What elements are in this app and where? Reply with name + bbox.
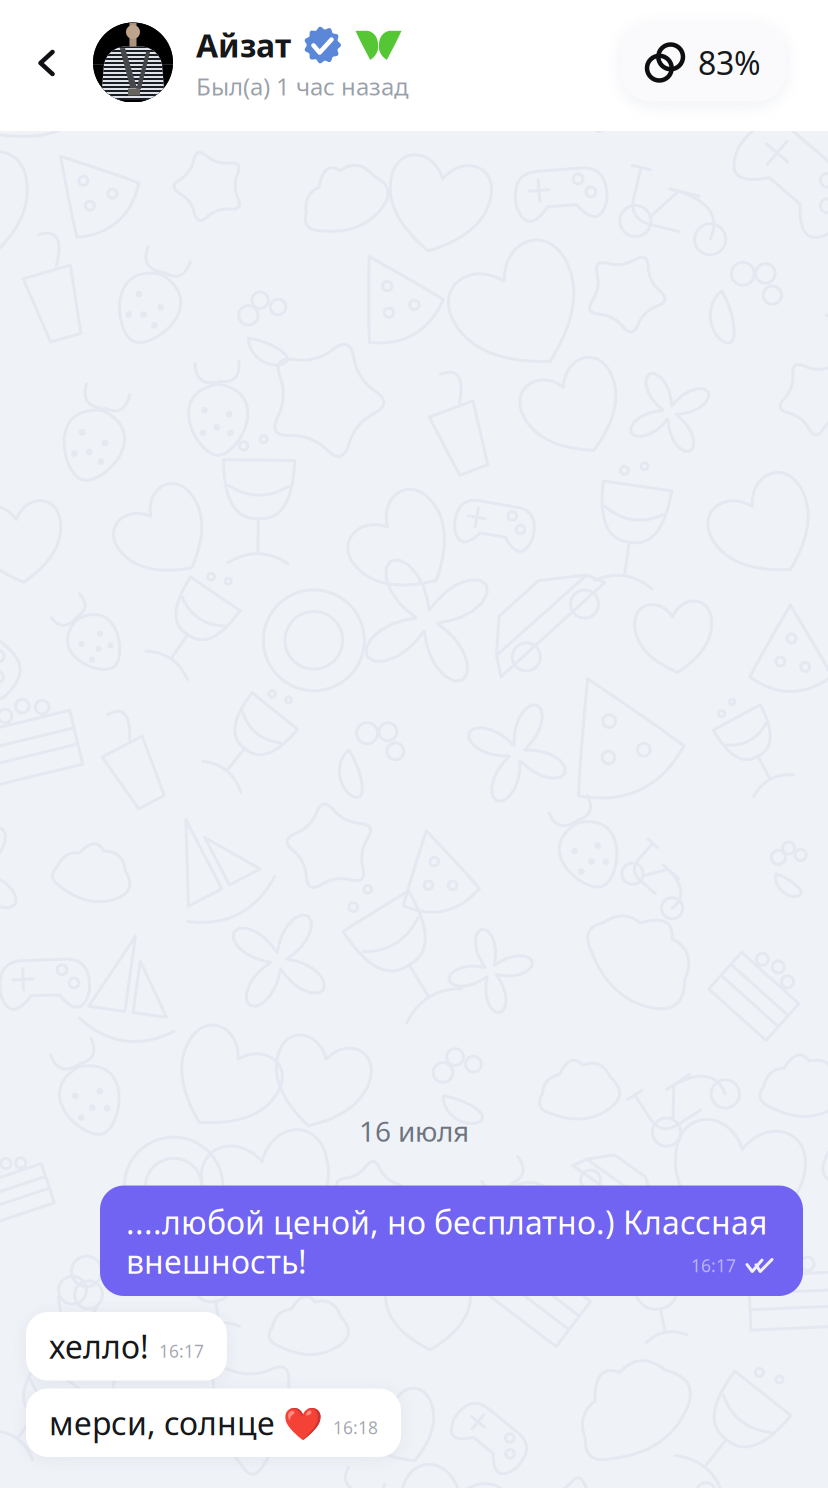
staticText: 16:18 [333, 1416, 378, 1439]
staticText: хелло! [49, 1325, 149, 1367]
staticText: 83% [698, 41, 761, 84]
staticText: 16 июля [359, 1112, 469, 1150]
staticText: 16:17 [159, 1339, 204, 1362]
button[interactable]: ....любой ценой, но бесплатно.) Классная… [100, 1186, 803, 1296]
staticText: ....любой ценой, но бесплатно.) Классная… [126, 1203, 767, 1281]
staticText: 16:17 [691, 1254, 736, 1277]
button[interactable]: хелло! [26, 1312, 227, 1380]
staticText: Айзат [196, 24, 291, 66]
button[interactable]: Back [0, 8, 93, 123]
staticText: мерси, солнце ❤️ [49, 1401, 323, 1444]
button[interactable]: мерси, солнце ❤️ [26, 1388, 401, 1457]
button[interactable]: Айзат [93, 22, 409, 108]
staticText: Был(а) 1 час назад [196, 70, 409, 102]
button[interactable]: 83% [621, 23, 786, 107]
